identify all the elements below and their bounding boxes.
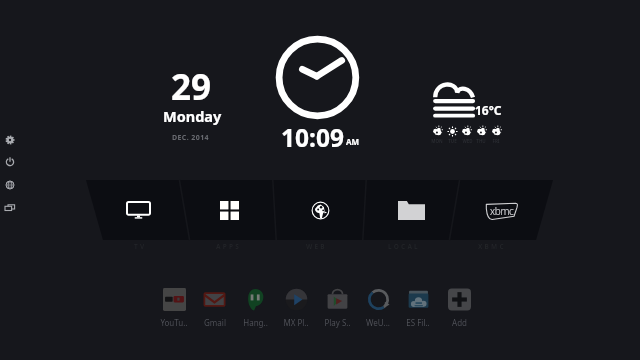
staticText: Play S.. (324, 317, 351, 328)
staticText: ES Fil.. (406, 317, 430, 328)
staticText: YouTu.. (160, 317, 188, 328)
staticText: APPS (216, 242, 241, 251)
staticText: THU (476, 138, 486, 144)
staticText: LOCAL (388, 242, 420, 251)
staticText: WeU... (366, 317, 390, 328)
button[interactable]: Power (0, 151, 19, 173)
button[interactable]: Network (0, 174, 19, 196)
staticText: MX Pl.. (283, 317, 309, 328)
staticText: Hang.. (243, 317, 268, 328)
button[interactable]: WeU... (358, 288, 398, 330)
button[interactable] (184, 180, 274, 240)
button[interactable]: ES Fil.. (398, 288, 438, 330)
staticText: xbmc (490, 204, 514, 218)
button[interactable]: Play S.. (317, 288, 357, 330)
staticText: XBMC (478, 242, 506, 251)
button[interactable]: YouTu.. (154, 288, 194, 330)
button[interactable]: Gmail (194, 288, 234, 330)
staticText: 16°C (475, 102, 502, 118)
button[interactable] (366, 180, 456, 240)
button[interactable]: Settings (0, 129, 19, 151)
staticText: AM (346, 136, 360, 147)
button[interactable]: Windows (0, 197, 19, 219)
staticText: Monday (163, 106, 222, 126)
staticText: MON (431, 138, 443, 144)
staticText: WEB (306, 242, 327, 251)
staticText: DEC. 2014 (172, 133, 209, 143)
button[interactable]: Hang.. (235, 288, 275, 330)
button[interactable]: xbmc (456, 180, 546, 240)
staticText: WED (462, 138, 473, 144)
staticText: FRI (492, 138, 500, 144)
staticText: 10:09 (281, 121, 344, 154)
staticText: 29 (171, 63, 212, 111)
staticText: Gmail (204, 317, 226, 328)
button[interactable] (93, 180, 183, 240)
button[interactable]: Add (439, 288, 479, 330)
staticText: TUE (448, 138, 457, 144)
staticText: Add (452, 317, 467, 328)
button[interactable] (275, 180, 365, 240)
button[interactable]: MX Pl.. (276, 288, 316, 330)
